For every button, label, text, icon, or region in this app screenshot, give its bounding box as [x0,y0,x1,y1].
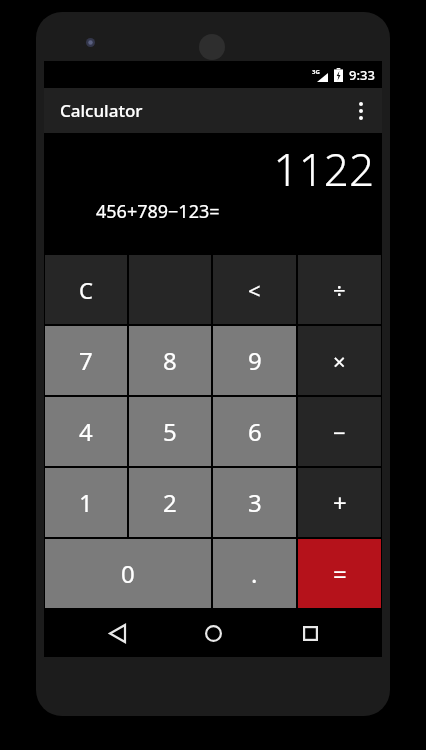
button[interactable]: 9 [213,326,296,395]
button[interactable]: = [298,539,381,608]
button[interactable]: 0 [45,539,211,608]
button[interactable]: Recents [286,610,334,657]
button[interactable]: C [45,255,127,324]
staticText: 2 [163,486,177,519]
staticText: Calculator [60,99,143,122]
staticText: 9 [248,344,262,377]
staticText: × [333,346,346,376]
staticText: ÷ [333,275,346,305]
staticText: 9:33 [349,66,375,84]
button[interactable]: More options [340,88,382,133]
staticText: < [248,275,261,305]
staticText: . [251,557,258,590]
staticText: 0 [121,557,135,590]
button[interactable]: < [213,255,296,324]
button[interactable]: 4 [45,397,127,466]
staticText: 5 [163,415,177,448]
button[interactable]: Back [93,610,141,657]
button[interactable]: 7 [45,326,127,395]
button[interactable]: 1 [45,468,127,537]
staticText: 3 [248,486,262,519]
button[interactable]: 8 [129,326,211,395]
button[interactable]: Home [189,610,237,657]
button[interactable]: + [298,468,381,537]
staticText: 8 [163,344,177,377]
staticText: 3G [312,68,320,76]
button[interactable]: × [298,326,381,395]
button[interactable]: . [213,539,296,608]
button[interactable]: − [298,397,381,466]
button[interactable]: 3 [213,468,296,537]
staticText: 456+789−123= [96,199,220,224]
button[interactable]: 5 [129,397,211,466]
staticText: 4 [79,415,93,448]
staticText: C [79,275,93,305]
staticText: 7 [79,344,93,377]
staticText: − [333,417,346,447]
staticText: 1 [79,486,93,519]
staticText: = [333,557,347,590]
button[interactable]: 2 [129,468,211,537]
staticText: 1122 [273,139,374,199]
staticText: 6 [248,415,262,448]
button[interactable]: ÷ [298,255,381,324]
button[interactable]: 6 [213,397,296,466]
staticText: + [333,486,347,519]
